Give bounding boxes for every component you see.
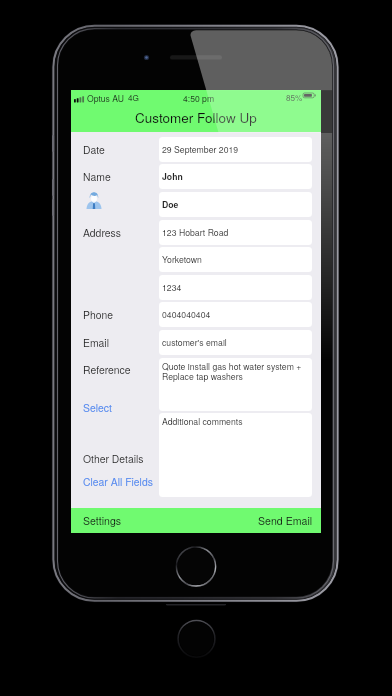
button[interactable]: 1234	[159, 275, 312, 300]
staticText: Customer Follow Up	[135, 108, 257, 127]
staticText: Other Details	[83, 451, 144, 466]
staticText: 29 September 2019	[162, 143, 239, 155]
staticText: Select	[83, 400, 112, 415]
button[interactable]: 123 Hobart Road	[159, 220, 312, 245]
button[interactable]: Doe	[159, 192, 312, 217]
button[interactable]: 0404040404	[159, 302, 312, 327]
button[interactable]: Yorketown	[159, 247, 312, 272]
staticText: customer's email	[162, 336, 227, 348]
staticText: 4G	[128, 92, 139, 104]
button[interactable]: Select	[83, 400, 112, 415]
staticText: Doe	[162, 198, 179, 210]
button[interactable]: 29 September 2019	[159, 137, 312, 162]
button[interactable]: Send Email	[258, 513, 313, 528]
staticText: Name	[83, 169, 111, 184]
staticText: Send Email	[258, 513, 313, 528]
staticText: 123 Hobart Road	[162, 226, 229, 238]
staticText: Clear All Fields	[83, 474, 153, 489]
button[interactable]: John	[159, 164, 312, 189]
staticText: Settings	[83, 513, 122, 528]
staticText: John	[162, 170, 183, 182]
staticText: Email	[83, 335, 109, 350]
staticText: 1234	[162, 281, 182, 293]
button[interactable]: Choose contact	[86, 190, 102, 209]
button[interactable]: Clear All Fields	[83, 474, 153, 489]
staticText: Phone	[83, 307, 114, 322]
staticText: 0404040404	[162, 308, 211, 320]
staticText: Optus AU	[87, 92, 124, 104]
button[interactable]: Additional comments	[159, 413, 312, 497]
button[interactable]: Quote install gas hot water system + Rep…	[159, 358, 312, 411]
staticText: Date	[83, 142, 105, 157]
button[interactable]: Settings	[83, 513, 122, 528]
staticText: 4:50 pm	[183, 92, 215, 104]
button[interactable]: customer's email	[159, 330, 312, 355]
staticText: Yorketown	[162, 253, 202, 265]
staticText: 85%	[286, 92, 303, 104]
staticText: Quote install gas hot water system + Rep…	[162, 360, 302, 383]
staticText: Reference	[83, 362, 131, 377]
staticText: Address	[83, 225, 121, 240]
staticText: Additional comments	[162, 415, 243, 427]
